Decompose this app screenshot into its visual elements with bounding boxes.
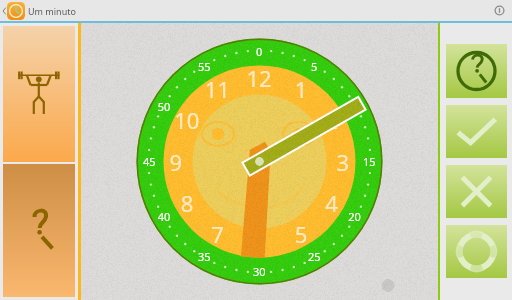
- staticText: Um minuto: [28, 5, 76, 17]
- button[interactable]: What time is it: [446, 44, 507, 98]
- button[interactable]: Correct: [446, 105, 507, 158]
- button[interactable]: Help: [446, 225, 507, 278]
- other: Info: [494, 5, 505, 16]
- button[interactable]: Wrong: [446, 165, 507, 218]
- button[interactable]: Exercise: [3, 26, 75, 162]
- button[interactable]: Help: [3, 164, 75, 297]
- other: Back: [1, 5, 7, 17]
